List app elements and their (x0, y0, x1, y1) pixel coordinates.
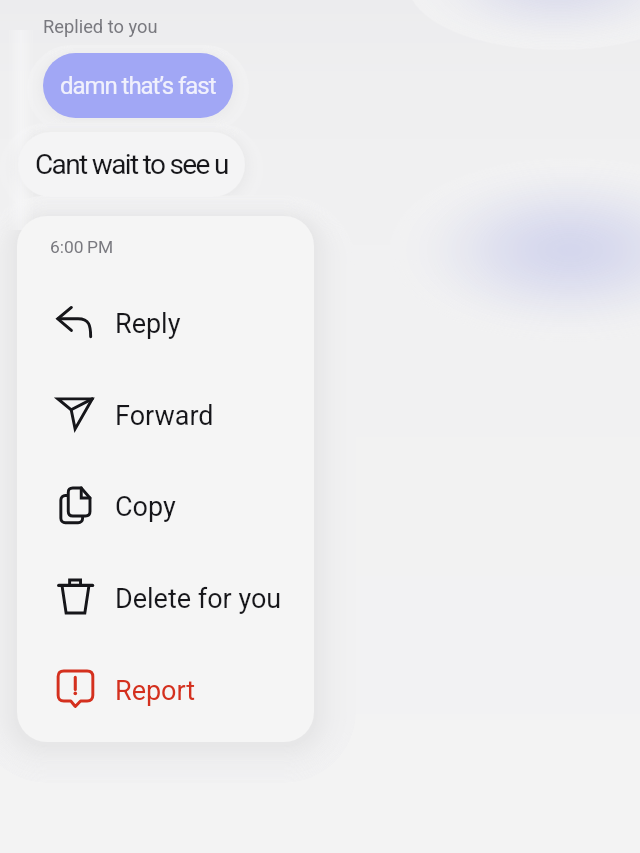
staticText: Reply (115, 308, 181, 340)
button[interactable]: Copy (17, 475, 314, 539)
button[interactable]: Reply (17, 292, 314, 356)
staticText: Replied to you (43, 16, 158, 37)
button[interactable]: Report (17, 659, 314, 723)
staticText: Report (115, 675, 196, 707)
staticText: Copy (115, 491, 176, 523)
staticText: damn that’s fast (60, 72, 216, 100)
button[interactable]: Forward (17, 384, 314, 448)
staticText: Cant wait to see u (35, 148, 228, 181)
button[interactable]: damn that’s fast (43, 53, 233, 118)
button[interactable]: Cant wait to see u (18, 132, 245, 197)
button[interactable]: Delete for you (17, 567, 314, 631)
staticText: 6:00 PM (50, 237, 114, 257)
staticText: Delete for you (115, 583, 282, 615)
staticText: Forward (115, 400, 214, 432)
